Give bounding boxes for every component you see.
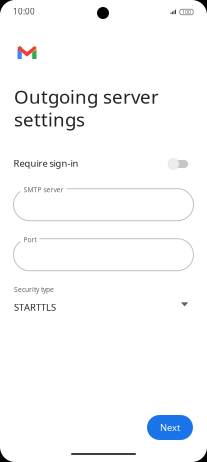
button[interactable]: Next — [147, 415, 193, 440]
staticText: Outgoing server — [14, 84, 159, 109]
staticText: settings — [14, 107, 85, 132]
button[interactable]: Port — [13, 239, 193, 271]
button[interactable]: Require sign-in — [13, 157, 193, 171]
staticText: STARTTLS — [14, 301, 56, 313]
staticText: Security type — [14, 285, 54, 294]
staticText: Port — [23, 235, 36, 244]
staticText: 10:00 — [13, 6, 35, 17]
staticText: Require sign-in — [13, 157, 78, 169]
button[interactable]: Security type — [14, 285, 194, 319]
button[interactable]: SMTP server — [13, 189, 193, 221]
staticText: Next — [160, 421, 180, 434]
staticText: SMTP server — [23, 185, 63, 194]
staticText: 100 — [182, 8, 191, 16]
